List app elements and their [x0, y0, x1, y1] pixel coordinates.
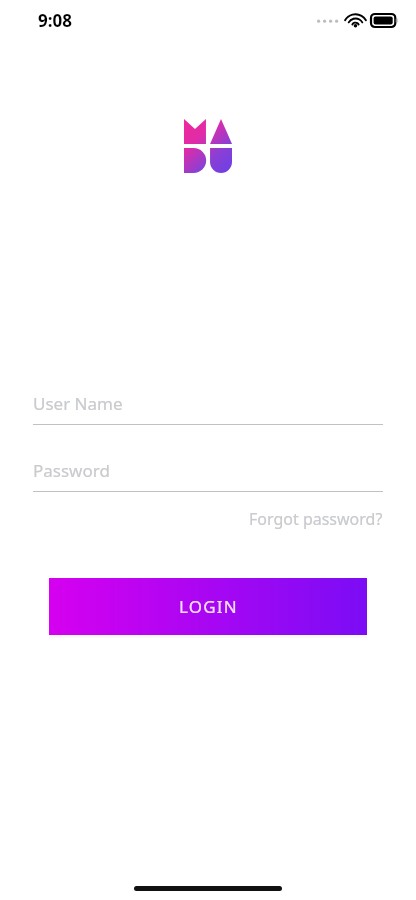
staticText: Password [33, 459, 110, 482]
button[interactable]: LOGIN [49, 578, 367, 635]
staticText: LOGIN [179, 595, 238, 618]
button[interactable]: Password [33, 459, 383, 492]
staticText: 9:08 [38, 9, 72, 32]
button[interactable]: User Name [33, 392, 383, 425]
staticText: User Name [33, 392, 123, 415]
button[interactable]: Forgot password? [33, 504, 383, 534]
staticText: Forgot password? [249, 508, 383, 530]
